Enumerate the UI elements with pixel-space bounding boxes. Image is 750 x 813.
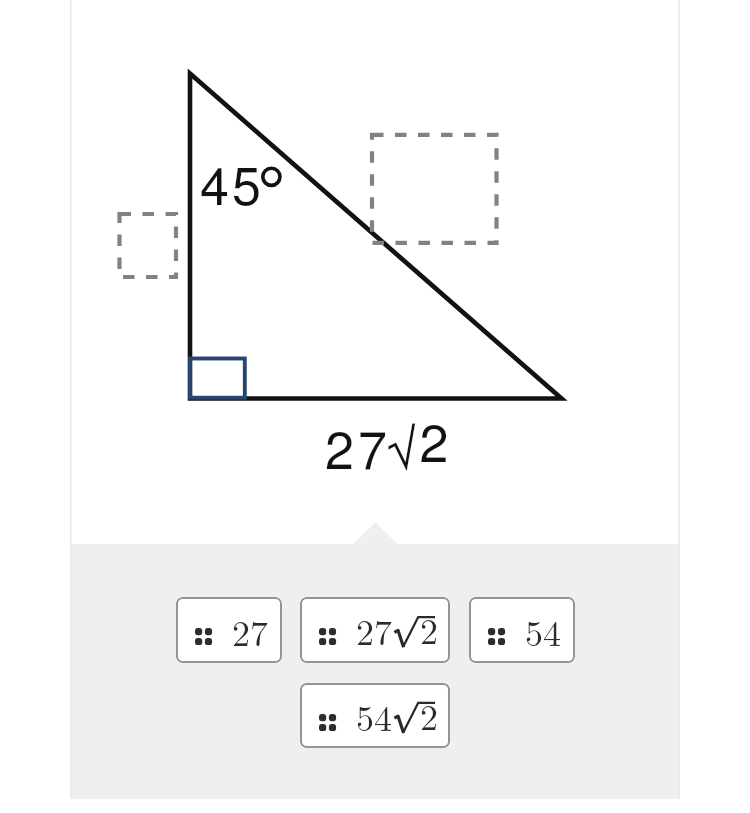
other: Drag handle [319, 714, 337, 732]
staticText: 2 [420, 603, 438, 654]
staticText: 54 [356, 690, 392, 741]
staticText: 27 [232, 605, 268, 656]
other: Drag handle [195, 628, 213, 646]
button[interactable]: Drag handle [176, 597, 282, 663]
staticText: 27 [356, 604, 392, 655]
staticText: 2 [420, 689, 438, 740]
staticText: 27 [325, 427, 391, 479]
other: Drag handle [488, 628, 506, 646]
button[interactable]: Drag handle [469, 597, 575, 663]
other: Drag handle [319, 628, 337, 646]
staticText: √2 [388, 420, 454, 472]
staticText: 54 [525, 605, 561, 656]
button[interactable]: Drop answer for the vertical leg [117, 212, 178, 279]
button[interactable]: Drag handle [300, 597, 450, 663]
button[interactable]: Drop answer for the hypotenuse [370, 133, 499, 245]
staticText: 45 [200, 163, 264, 215]
button[interactable]: Drag handle [300, 683, 450, 748]
